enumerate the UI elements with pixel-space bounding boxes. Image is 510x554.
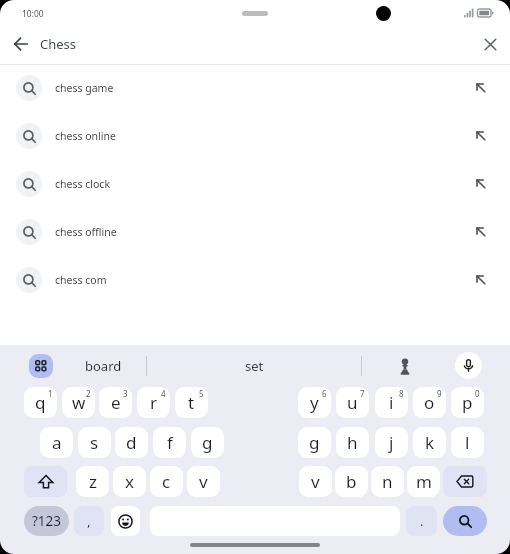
staticText: 1 [48,388,53,399]
staticText: j [389,431,394,454]
button[interactable] [455,352,482,379]
staticText: o [424,391,435,414]
button[interactable]: h [336,427,369,458]
button[interactable]: t [175,387,208,418]
staticText: 4 [161,388,166,399]
staticText: v [311,470,320,493]
button[interactable]: chess game [0,64,510,112]
button[interactable]: a [40,427,73,458]
staticText: d [126,431,137,454]
staticText: chess clock [55,177,110,191]
button[interactable]: d [115,427,148,458]
staticText: t [188,391,195,414]
button[interactable]: m [407,466,440,497]
button[interactable]: , [74,506,104,536]
staticText: chess offline [55,225,117,239]
staticText: g [309,431,320,454]
staticText: set [245,357,264,375]
button[interactable]: n [371,466,404,497]
staticText: 0 [475,388,480,399]
button[interactable]: c [150,466,183,497]
staticText: p [462,391,473,414]
staticText: r [150,391,158,414]
button[interactable]: chess com [0,256,510,304]
button[interactable]: z [76,466,109,497]
staticText: 2 [86,388,91,399]
staticText: n [382,470,393,493]
button[interactable] [477,31,503,57]
button[interactable]: j [375,427,408,458]
button[interactable]: l [451,427,484,458]
button[interactable] [8,31,34,57]
button[interactable]: v [299,466,332,497]
button[interactable]: s [78,427,111,458]
staticText: b [346,470,357,493]
staticText: h [347,431,358,454]
button[interactable]: . [406,506,437,536]
staticText: y [310,391,319,414]
staticText: 9 [437,388,442,399]
button[interactable]: u [336,387,369,418]
staticText: z [89,470,97,493]
button[interactable]: set [147,353,361,379]
staticText: k [425,431,435,454]
button[interactable]: g [298,427,331,458]
button[interactable]: q [24,387,57,418]
staticText: chess com [55,273,107,287]
button[interactable]: ?123 [24,506,69,536]
button[interactable]: chess offline [0,208,510,256]
staticText: m [416,470,432,493]
staticText: , [87,512,91,530]
staticText: w [72,391,86,414]
staticText: e [111,391,121,414]
staticText: a [52,431,62,454]
staticText: chess game [55,81,114,95]
button[interactable] [29,354,53,378]
button[interactable]: x [113,466,146,497]
staticText: s [90,431,99,454]
staticText: board [85,357,122,375]
button[interactable]: k [413,427,446,458]
button[interactable]: f [153,427,186,458]
staticText: q [35,391,46,414]
staticText: c [162,470,171,493]
button[interactable] [362,353,448,379]
button[interactable]: e [99,387,132,418]
button[interactable]: g [191,427,224,458]
staticText: . [420,512,424,530]
staticText: 5 [199,388,204,399]
button[interactable]: chess online [0,112,510,160]
button[interactable]: o [413,387,446,418]
staticText: ?123 [32,512,62,530]
staticText: 8 [399,388,404,399]
button[interactable]: w [62,387,95,418]
button[interactable]: b [335,466,368,497]
staticText: u [347,391,358,414]
button[interactable]: v [187,466,220,497]
button[interactable] [443,506,487,536]
staticText: i [389,391,394,414]
button[interactable] [24,466,67,497]
button[interactable]: board [60,353,146,379]
staticText: f [167,431,173,454]
button[interactable]: p [451,387,484,418]
button[interactable] [111,506,140,536]
staticText: g [202,431,213,454]
staticText: l [465,431,470,454]
button[interactable] [443,466,487,497]
staticText: 10:00 [22,8,44,20]
staticText: Chess [40,35,77,53]
staticText: v [199,470,208,493]
staticText: 6 [322,388,327,399]
staticText: 3 [123,388,128,399]
staticText: 7 [360,388,365,399]
button[interactable]: i [375,387,408,418]
button[interactable]: r [137,387,170,418]
staticText: chess online [55,129,116,143]
button[interactable]: y [298,387,331,418]
button[interactable]: chess clock [0,160,510,208]
staticText: x [125,470,134,493]
